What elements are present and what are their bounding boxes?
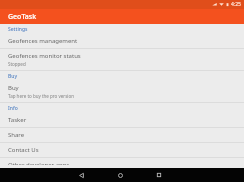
button[interactable]: Recent apps bbox=[148, 168, 170, 182]
button[interactable]: Tasker bbox=[0, 113, 244, 127]
staticText: Buy bbox=[8, 84, 19, 92]
button[interactable]: Other developer apps bbox=[0, 158, 244, 168]
button[interactable]: Geofences management bbox=[0, 34, 244, 48]
staticText: Buy bbox=[8, 73, 18, 80]
button[interactable]: Share bbox=[0, 128, 244, 142]
staticText: Other developer apps bbox=[8, 161, 70, 165]
button[interactable]: Home bbox=[109, 168, 131, 182]
button[interactable]: Contact Us bbox=[0, 143, 244, 157]
staticText: Stopped bbox=[8, 61, 26, 67]
staticText: Tasker bbox=[8, 116, 27, 124]
button[interactable]: Back bbox=[70, 168, 92, 182]
staticText: Info bbox=[8, 105, 18, 112]
button[interactable]: Buy bbox=[0, 81, 244, 102]
button[interactable]: Geofences monitor status bbox=[0, 49, 244, 70]
staticText: Tap here to buy the pro version bbox=[8, 93, 74, 99]
staticText: GeoTask bbox=[8, 12, 37, 22]
staticText: Share bbox=[8, 131, 25, 139]
staticText: Geofences management bbox=[8, 37, 78, 45]
staticText: Geofences monitor status bbox=[8, 52, 81, 60]
staticText: Settings bbox=[8, 26, 28, 33]
staticText: Contact Us bbox=[8, 146, 39, 154]
staticText: 4:25 bbox=[231, 1, 241, 8]
